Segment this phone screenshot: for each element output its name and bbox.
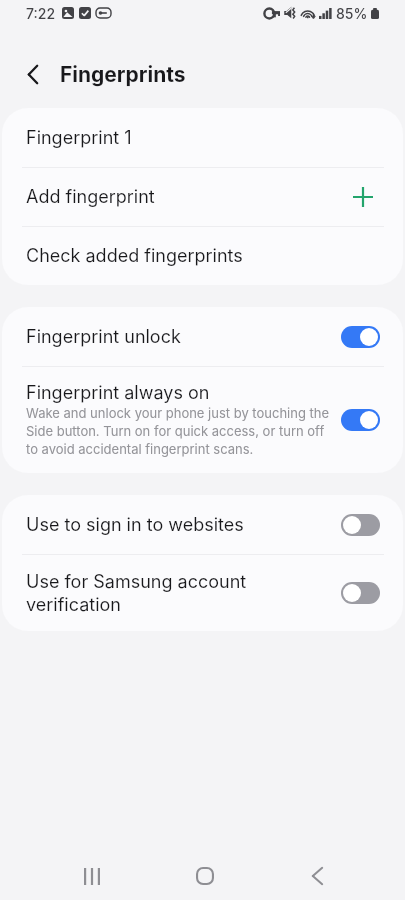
button[interactable]: Navigate up (12, 53, 54, 95)
staticText: 7:22 (26, 5, 56, 22)
staticText: Fingerprint always on (26, 381, 210, 404)
button[interactable]: Fingerprint unlock (2, 307, 403, 366)
button[interactable]: Use for Samsung account verification (2, 554, 403, 631)
button[interactable]: Add fingerprint (2, 167, 403, 226)
button[interactable]: Switch off (341, 582, 380, 604)
staticText: Add fingerprint (26, 185, 155, 208)
staticText: Check added fingerprints (26, 244, 243, 267)
button[interactable]: Back (261, 846, 374, 900)
button[interactable]: Switch off (341, 514, 380, 536)
staticText: Fingerprint unlock (26, 325, 181, 348)
button[interactable]: Fingerprint always on (2, 366, 403, 473)
button[interactable]: Switch on (341, 326, 380, 348)
staticText: Wake and unlock your phone just by touch… (26, 404, 331, 458)
staticText: Use for Samsung account verification (26, 570, 331, 616)
button[interactable]: Use to sign in to websites (2, 495, 403, 554)
button[interactable]: Switch on (341, 409, 380, 431)
button[interactable]: Recent apps (35, 846, 148, 900)
staticText: 85% (336, 5, 368, 22)
button[interactable]: Fingerprint 1 (2, 108, 403, 167)
button[interactable]: Home (148, 846, 261, 900)
staticText: Use to sign in to websites (26, 513, 244, 536)
staticText: Fingerprints (60, 62, 186, 87)
staticText: Fingerprint 1 (26, 126, 132, 149)
button[interactable]: Check added fingerprints (2, 226, 403, 285)
